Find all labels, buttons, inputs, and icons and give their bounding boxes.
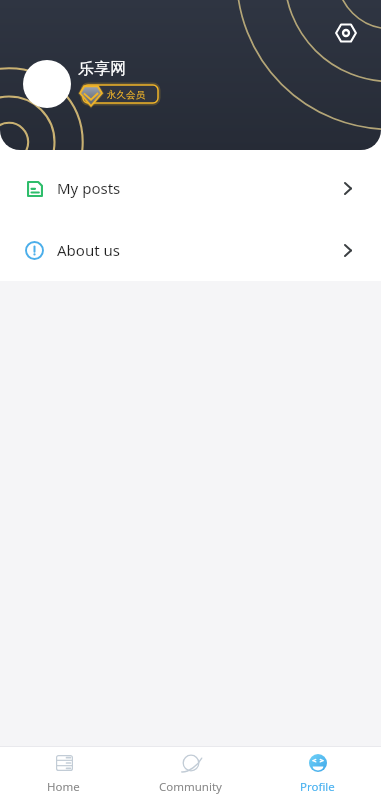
button[interactable]: 永久会员: [78, 83, 158, 109]
staticText: 乐享网: [78, 59, 126, 79]
button[interactable]: Settings: [332, 19, 360, 47]
staticText: About us: [57, 240, 120, 260]
button[interactable]: Home: [0, 747, 127, 800]
staticText: Profile: [300, 779, 335, 795]
button[interactable]: Avatar: [23, 60, 71, 108]
button[interactable]: My posts: [0, 157, 381, 219]
staticText: 永久会员: [107, 89, 145, 101]
button[interactable]: About us: [0, 219, 381, 281]
staticText: Home: [47, 779, 80, 795]
button[interactable]: Community: [127, 747, 254, 800]
staticText: My posts: [57, 178, 121, 198]
staticText: Community: [159, 779, 222, 795]
button[interactable]: Profile: [254, 747, 381, 800]
